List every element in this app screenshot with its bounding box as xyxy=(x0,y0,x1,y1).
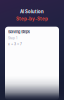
staticText: x + 3 = 7 xyxy=(8,42,22,46)
staticText: Step-by-Step xyxy=(16,16,48,22)
staticText: AI Solution xyxy=(20,9,44,14)
staticText: Step 1 xyxy=(8,36,17,40)
staticText: Solving Steps xyxy=(8,30,30,34)
